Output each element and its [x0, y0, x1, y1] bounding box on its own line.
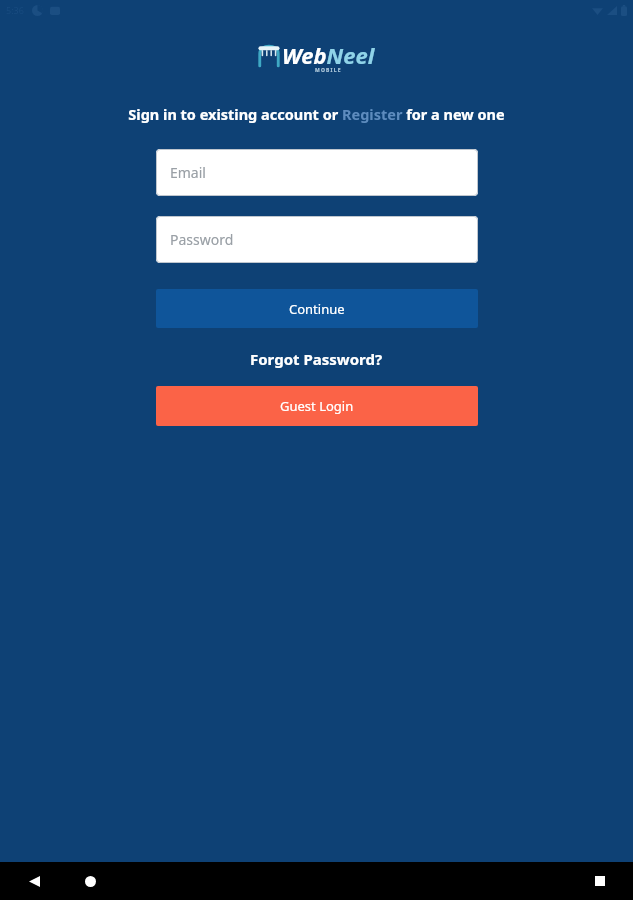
staticText: WebNeel [282, 40, 375, 70]
button[interactable]: Back [18, 865, 50, 897]
staticText: Guest Login [280, 397, 354, 415]
staticText: Email [170, 163, 206, 182]
staticText: Continue [289, 300, 345, 318]
button[interactable]: Continue [156, 289, 478, 328]
staticText: Password [170, 230, 234, 249]
button[interactable]: Forgot Password? [240, 346, 393, 372]
button[interactable]: Recent apps [584, 865, 616, 897]
staticText: Forgot Password? [250, 349, 383, 369]
staticText: MOBILE [315, 67, 342, 74]
button[interactable]: Password [156, 216, 478, 263]
button[interactable]: Guest Login [156, 386, 478, 426]
button[interactable]: Home [74, 865, 106, 897]
button[interactable]: Email [156, 149, 478, 196]
staticText: Sign in to existing account or Register … [128, 104, 505, 124]
